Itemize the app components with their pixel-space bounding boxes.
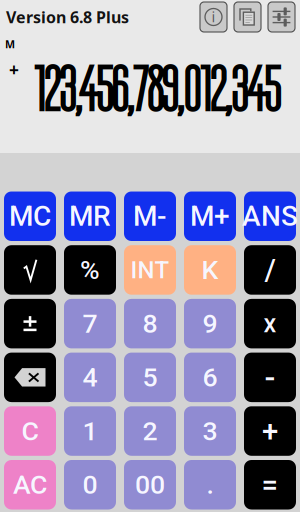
staticText: MC: [9, 200, 51, 233]
button[interactable]: Copy: [234, 2, 261, 32]
staticText: M: [5, 37, 15, 51]
staticText: AC: [13, 469, 47, 500]
button[interactable]: 2: [124, 406, 176, 456]
staticText: 00: [135, 469, 165, 500]
staticText: C: [21, 415, 38, 447]
button[interactable]: .: [184, 460, 236, 509]
button[interactable]: K: [184, 245, 236, 295]
button[interactable]: 5: [124, 353, 176, 402]
button[interactable]: x: [244, 299, 296, 348]
staticText: /: [264, 253, 275, 287]
staticText: K: [201, 254, 218, 286]
button[interactable]: ANS: [244, 191, 296, 241]
button[interactable]: 00: [124, 460, 176, 509]
button[interactable]: %: [64, 245, 116, 295]
button[interactable]: 4: [64, 353, 116, 402]
staticText: M+: [190, 200, 230, 233]
button[interactable]: M-: [124, 191, 176, 241]
staticText: i: [211, 7, 215, 26]
staticText: M-: [133, 200, 167, 233]
staticText: Version 6.8 Plus: [6, 6, 129, 28]
button[interactable]: 6: [184, 353, 236, 402]
button[interactable]: Settings: [268, 2, 295, 32]
button[interactable]: =: [244, 460, 296, 509]
button[interactable]: Square root: [4, 245, 56, 295]
button[interactable]: 7: [64, 299, 116, 348]
staticText: 4: [82, 362, 97, 393]
button[interactable]: +: [244, 406, 296, 456]
button[interactable]: 3: [184, 406, 236, 456]
button[interactable]: 9: [184, 299, 236, 348]
staticText: 2: [142, 415, 157, 447]
staticText: 0: [82, 469, 97, 500]
staticText: %: [80, 254, 100, 286]
button[interactable]: 0: [64, 460, 116, 509]
staticText: 123,456,789,012,345: [34, 55, 280, 126]
staticText: 9: [202, 308, 217, 339]
button[interactable]: MC: [4, 191, 56, 241]
button[interactable]: MR: [64, 191, 116, 241]
staticText: =: [261, 468, 278, 502]
staticText: 5: [142, 362, 157, 393]
button[interactable]: About: [200, 2, 227, 32]
button[interactable]: Plus minus: [4, 299, 56, 348]
button[interactable]: /: [244, 245, 296, 295]
staticText: ANS: [242, 200, 298, 233]
staticText: 1: [82, 415, 97, 447]
staticText: +: [9, 58, 19, 81]
button[interactable]: C: [4, 406, 56, 456]
staticText: .: [206, 469, 213, 500]
staticText: 7: [82, 308, 97, 339]
staticText: MR: [69, 200, 111, 233]
staticText: 6: [202, 362, 217, 393]
button[interactable]: M+: [184, 191, 236, 241]
staticText: INT: [130, 256, 169, 284]
button[interactable]: 8: [124, 299, 176, 348]
button[interactable]: AC: [4, 460, 56, 509]
staticText: 8: [142, 308, 157, 339]
button[interactable]: 1: [64, 406, 116, 456]
staticText: x: [263, 309, 276, 338]
staticText: 3: [202, 415, 217, 447]
button[interactable]: Backspace: [4, 353, 56, 402]
button[interactable]: -: [244, 353, 296, 402]
staticText: +: [262, 414, 278, 448]
staticText: -: [264, 359, 275, 396]
button[interactable]: INT: [124, 245, 176, 295]
